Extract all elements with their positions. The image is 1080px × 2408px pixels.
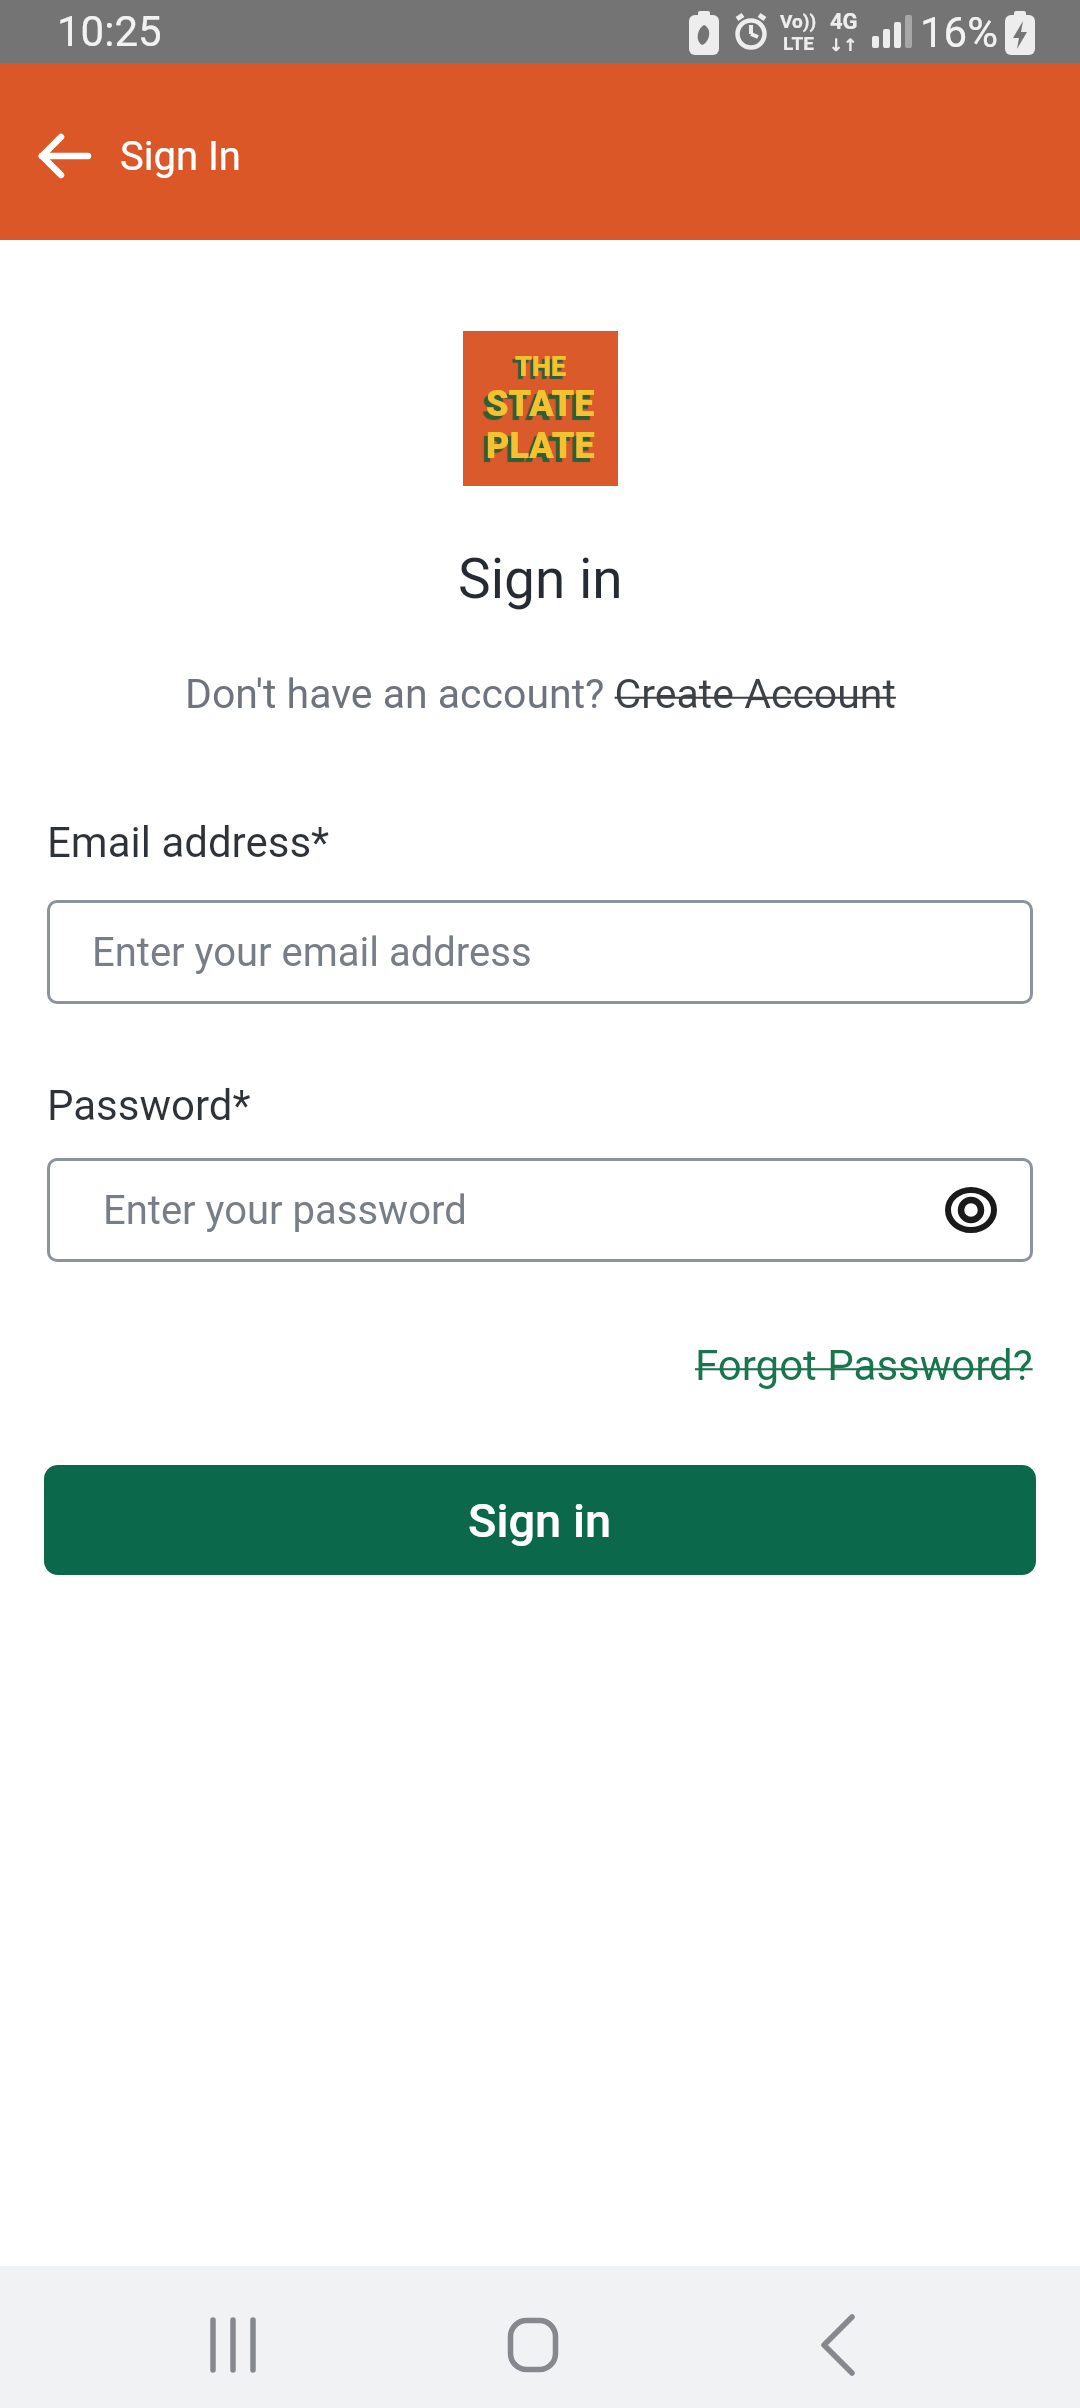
staticText: Sign In [120,133,241,180]
button[interactable] [473,2274,593,2408]
staticText: 16% [920,8,998,57]
staticText: Vo)) [780,10,817,32]
staticText: ↓↑ [829,35,858,55]
staticText: Enter your email address [92,929,532,976]
staticText: LTE [783,32,814,54]
staticText: Enter your password [103,1187,467,1234]
staticText: Password* [47,1081,251,1130]
button[interactable]: Enter your email address [47,900,1033,1004]
staticText: STATE [486,383,595,425]
button[interactable]: Sign in [44,1465,1036,1575]
staticText: 4G [830,9,858,35]
button[interactable]: Forgot Password? [695,1341,1033,1390]
button[interactable] [35,126,95,186]
button[interactable] [173,2274,293,2408]
button[interactable] [943,1182,999,1238]
staticText: 10:25 [57,7,162,56]
staticText: Sign in [458,547,623,611]
staticText: PLATE [486,425,595,467]
staticText: Sign in [468,1493,612,1548]
button[interactable]: Don't have an account? Create Account [185,670,896,718]
staticText: Email address* [47,818,330,867]
staticText: THE [515,351,567,383]
button[interactable]: Enter your password [47,1158,1033,1262]
button[interactable] [778,2274,898,2408]
